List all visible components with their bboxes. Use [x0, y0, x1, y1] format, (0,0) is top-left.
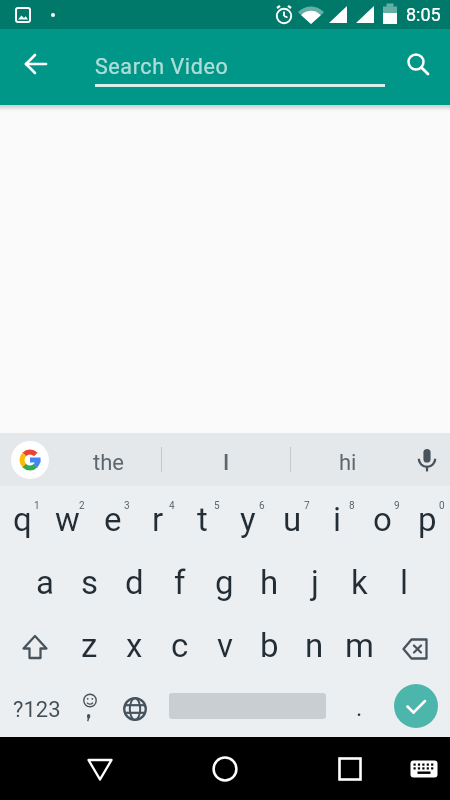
button[interactable]: o [360, 486, 405, 549]
button[interactable] [404, 433, 450, 486]
staticText: j [311, 563, 319, 602]
staticText: hi [339, 450, 357, 476]
staticText: r [152, 500, 164, 539]
button[interactable]: p [405, 486, 450, 549]
button[interactable]: n [292, 612, 337, 675]
button[interactable]: f [157, 549, 202, 612]
button[interactable] [404, 749, 444, 789]
staticText: g [215, 563, 234, 602]
staticText: t [197, 500, 208, 539]
button[interactable]: v [202, 612, 247, 675]
button[interactable]: g [202, 549, 247, 612]
staticText: q [13, 500, 32, 539]
button[interactable]: b [247, 612, 292, 675]
staticText: e [104, 500, 122, 539]
button[interactable]: the [56, 433, 161, 486]
button[interactable]: m [337, 612, 382, 675]
staticText: k [351, 563, 368, 602]
button[interactable]: w [45, 486, 90, 549]
staticText: w [55, 500, 80, 539]
button[interactable]: t [180, 486, 225, 549]
staticText: . [356, 694, 363, 722]
staticText: 3 [124, 500, 130, 512]
staticText: x [126, 626, 143, 665]
staticText: 8 [349, 500, 355, 512]
staticText: h [260, 563, 279, 602]
staticText: m [345, 626, 374, 665]
staticText: 7 [304, 500, 310, 512]
button[interactable]: q [0, 486, 45, 549]
staticText: o [373, 500, 392, 539]
button[interactable]: u [270, 486, 315, 549]
button[interactable] [67, 675, 112, 737]
staticText: Search Video [95, 54, 229, 79]
button[interactable] [0, 612, 67, 675]
button[interactable]: r [135, 486, 180, 549]
staticText: 2 [79, 500, 85, 512]
staticText: z [81, 626, 98, 665]
button[interactable] [382, 675, 450, 737]
button[interactable]: Search Video [95, 29, 385, 105]
button[interactable]: j [292, 549, 337, 612]
button[interactable]: d [112, 549, 157, 612]
button[interactable] [77, 746, 123, 792]
staticText: b [260, 626, 279, 665]
button[interactable]: s [67, 549, 112, 612]
button[interactable] [14, 45, 58, 89]
button[interactable] [327, 746, 373, 792]
button[interactable] [382, 612, 450, 675]
staticText: i [333, 500, 342, 539]
staticText: 8:05 [406, 4, 441, 25]
button[interactable]: hi [291, 433, 404, 486]
staticText: the [93, 450, 124, 476]
button[interactable]: i [315, 486, 360, 549]
button[interactable]: a [22, 549, 67, 612]
button[interactable] [0, 433, 56, 486]
button[interactable]: l [382, 549, 427, 612]
staticText: 0 [439, 500, 445, 512]
button[interactable]: h [247, 549, 292, 612]
button[interactable]: I [162, 433, 290, 486]
staticText: v [217, 626, 233, 665]
staticText: s [81, 563, 99, 602]
staticText: l [400, 563, 409, 602]
staticText: 4 [169, 500, 175, 512]
button[interactable]: e [90, 486, 135, 549]
staticText: c [171, 626, 189, 665]
button[interactable]: y [225, 486, 270, 549]
button[interactable]: x [112, 612, 157, 675]
staticText: 9 [394, 500, 400, 512]
staticText: ?123 [13, 697, 61, 723]
staticText: d [125, 563, 144, 602]
staticText: 6 [259, 500, 265, 512]
button[interactable] [157, 675, 337, 737]
button[interactable] [112, 675, 157, 737]
staticText: 5 [214, 500, 220, 512]
button[interactable] [202, 746, 248, 792]
staticText: y [240, 500, 256, 539]
staticText: I [223, 450, 230, 476]
button[interactable]: k [337, 549, 382, 612]
staticText: a [36, 563, 54, 602]
staticText: p [418, 500, 437, 539]
staticText: f [174, 563, 186, 602]
staticText: u [283, 500, 302, 539]
button[interactable]: z [67, 612, 112, 675]
button[interactable]: c [157, 612, 202, 675]
staticText: 1 [34, 500, 40, 512]
staticText: n [305, 626, 324, 665]
button[interactable] [396, 45, 440, 89]
button[interactable]: ?123 [0, 675, 67, 737]
button[interactable]: . [337, 675, 382, 737]
